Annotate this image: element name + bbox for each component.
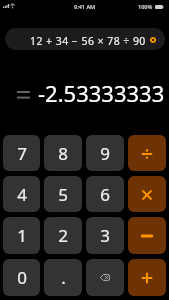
staticText: 1 <box>17 224 27 247</box>
staticText: 9:41 AM <box>74 3 96 10</box>
button[interactable]: 6 <box>86 176 124 212</box>
staticText: . <box>61 266 66 289</box>
staticText: 6 <box>100 183 110 206</box>
button[interactable]: 5 <box>44 176 82 212</box>
button[interactable]: Divide <box>128 135 166 171</box>
button[interactable]: 2 <box>44 217 82 254</box>
staticText: 5 <box>58 183 68 206</box>
button[interactable]: Subtract <box>128 217 166 254</box>
staticText: 9 <box>100 142 110 165</box>
button[interactable]: Clear expression <box>150 37 156 43</box>
button[interactable]: Backspace <box>86 259 124 296</box>
button[interactable]: Add <box>128 259 166 296</box>
staticText: 8 <box>58 142 68 165</box>
button[interactable]: 9 <box>86 135 124 171</box>
button[interactable]: Multiply <box>128 176 166 212</box>
button[interactable]: 3 <box>86 217 124 254</box>
staticText: 0 <box>17 266 27 289</box>
staticText: -2.53333333 <box>38 78 165 102</box>
button[interactable]: 12 + 34 − 56 × 78 ÷ 90 <box>5 28 165 50</box>
button[interactable]: 1 <box>3 217 40 254</box>
button[interactable]: 0 <box>3 259 40 296</box>
button[interactable]: 7 <box>3 135 40 171</box>
staticText: 4 <box>17 183 27 206</box>
staticText: 7 <box>17 142 27 165</box>
staticText: 100% <box>138 3 153 10</box>
button[interactable]: . <box>44 259 82 296</box>
button[interactable]: 8 <box>44 135 82 171</box>
staticText: 3 <box>100 224 110 247</box>
staticText: 12 + 34 − 56 × 78 ÷ 90 <box>30 34 146 48</box>
staticText: 2 <box>58 224 68 247</box>
button[interactable]: 4 <box>3 176 40 212</box>
